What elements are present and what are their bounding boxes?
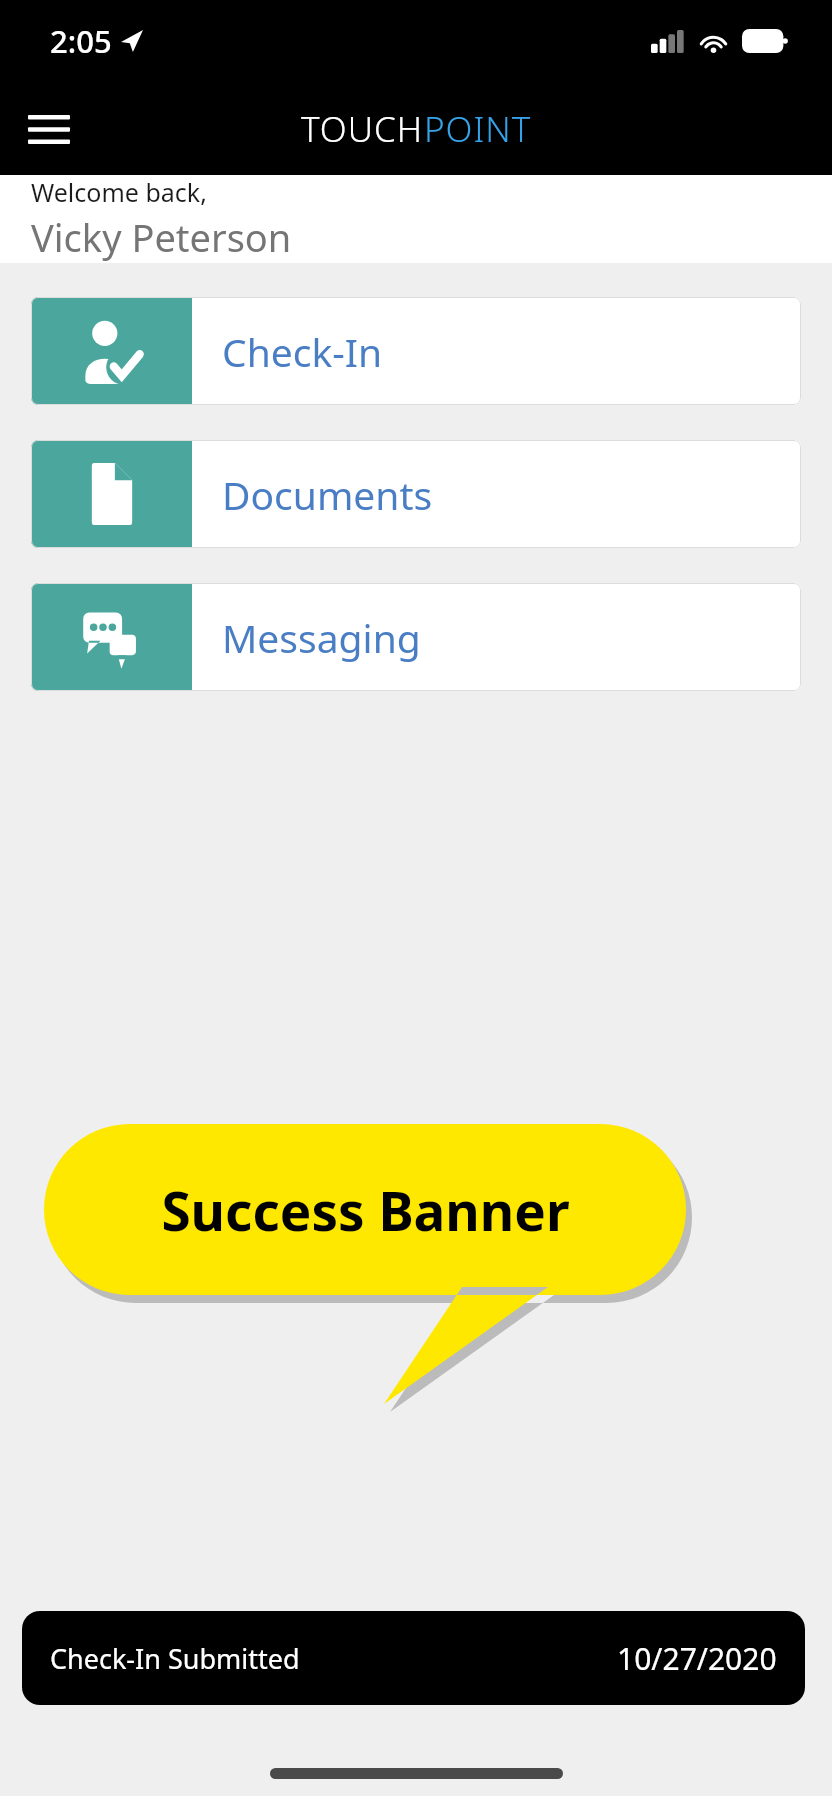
staticText: Success Banner bbox=[161, 1174, 570, 1246]
button[interactable]: Menu bbox=[22, 102, 76, 156]
staticText: 2:05 bbox=[50, 20, 112, 62]
staticText: POINT bbox=[424, 105, 532, 153]
staticText: Check-In bbox=[222, 325, 383, 378]
staticText: 10/27/2020 bbox=[617, 1638, 777, 1679]
staticText: Documents bbox=[222, 468, 433, 521]
staticText: Vicky Peterson bbox=[31, 211, 292, 263]
button[interactable]: Messaging bbox=[31, 583, 801, 691]
staticText: Welcome back, bbox=[31, 175, 207, 209]
staticText: TOUCH bbox=[301, 105, 424, 153]
staticText: Messaging bbox=[222, 611, 421, 664]
button[interactable]: Check-In bbox=[31, 297, 801, 405]
button[interactable]: Check-In Submitted bbox=[22, 1611, 805, 1705]
button[interactable]: Documents bbox=[31, 440, 801, 548]
staticText: Check-In Submitted bbox=[50, 1640, 300, 1677]
